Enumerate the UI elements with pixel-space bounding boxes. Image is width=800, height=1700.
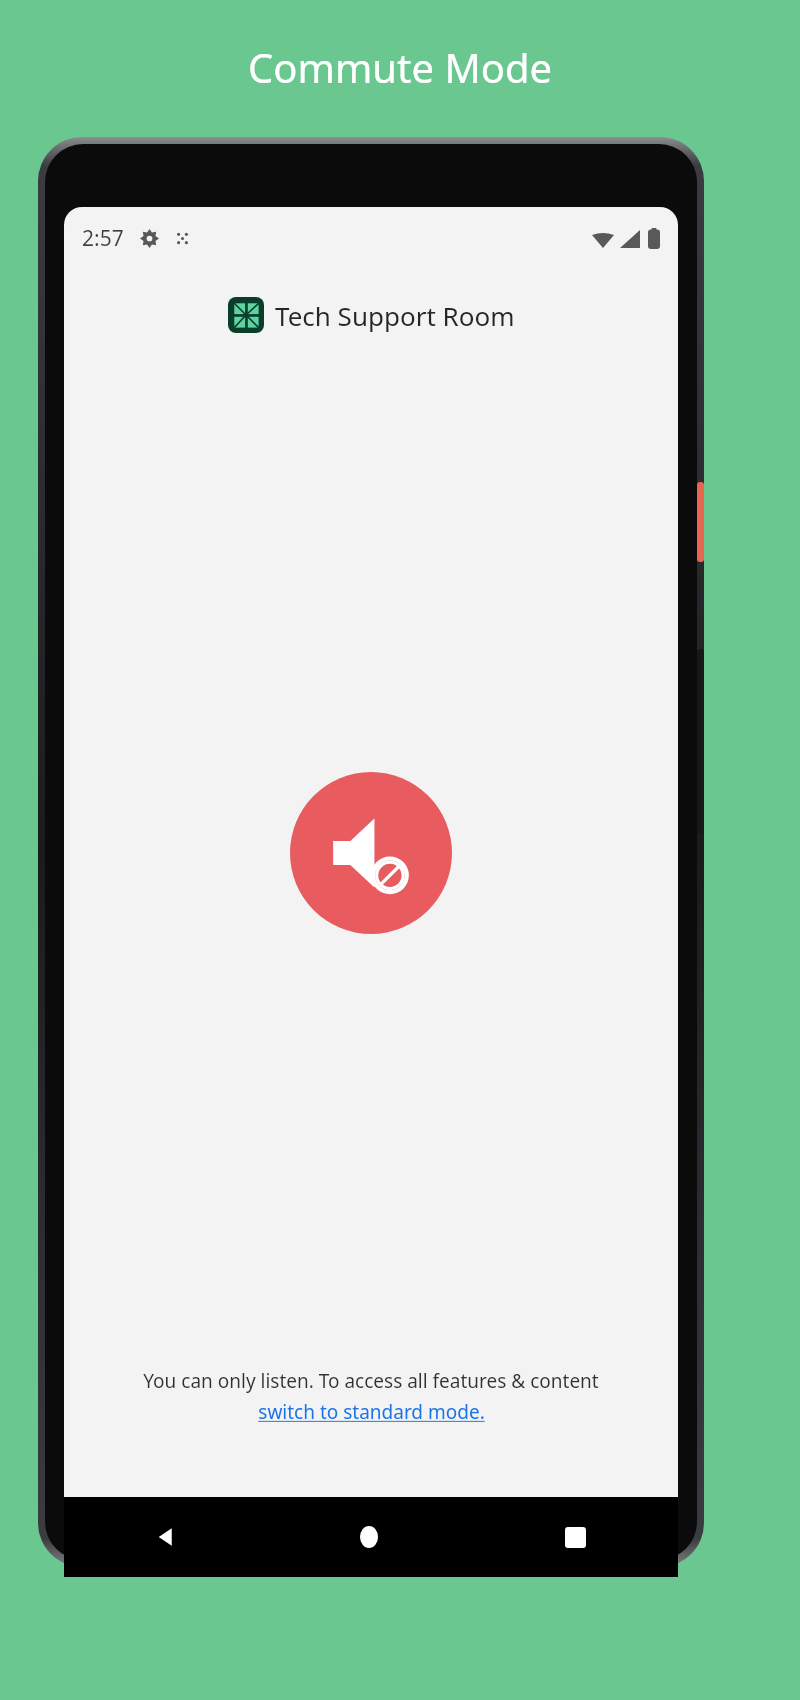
button[interactable]: Home — [268, 1497, 473, 1577]
button[interactable]: Muted — [290, 772, 452, 934]
button[interactable]: Recent apps — [473, 1497, 678, 1577]
staticText: switch to standard mode. — [258, 1399, 485, 1425]
staticText: Tech Support Room — [275, 298, 515, 333]
button[interactable]: switch to standard mode. — [258, 1399, 485, 1425]
button[interactable]: Back — [64, 1497, 268, 1577]
staticText: Commute Mode — [248, 40, 553, 94]
staticText: 2:57 — [82, 224, 124, 253]
staticText: You can only listen. To access all featu… — [143, 1368, 599, 1394]
